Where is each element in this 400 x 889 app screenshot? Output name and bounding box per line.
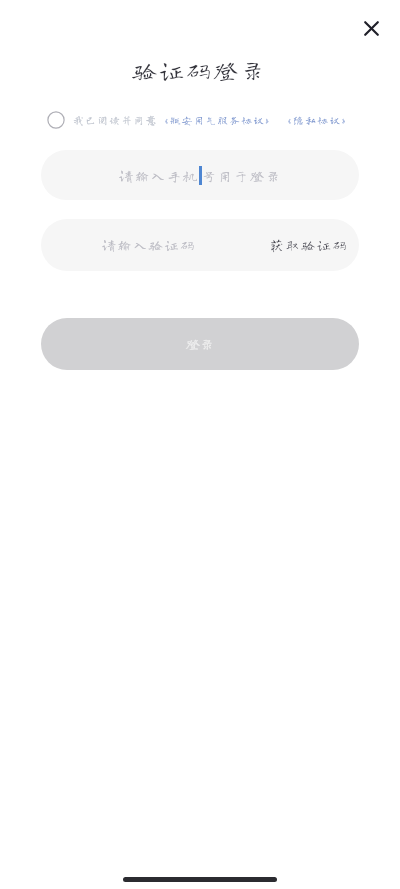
staticText: 验证码登录 bbox=[0, 58, 400, 82]
staticText: 号用于登录 bbox=[202, 169, 282, 183]
button[interactable]: 获取验证码 bbox=[263, 232, 356, 258]
button[interactable]: Close bbox=[350, 7, 393, 50]
staticText: 请输入验证码 bbox=[102, 238, 197, 252]
staticText: 《瓶安用气服务协议》 bbox=[158, 115, 277, 125]
button[interactable]: 登录 bbox=[41, 318, 359, 370]
staticText: 《隐私协议》 bbox=[281, 115, 354, 125]
button[interactable]: 我已阅读并同意 bbox=[47, 110, 354, 130]
staticText: 请输入手机 bbox=[119, 169, 199, 183]
staticText: 获取验证码 bbox=[270, 238, 349, 252]
button[interactable]: 请输入手机 bbox=[41, 150, 359, 200]
staticText: 登录 bbox=[186, 337, 214, 351]
staticText: 我已阅读并同意 bbox=[73, 115, 158, 125]
